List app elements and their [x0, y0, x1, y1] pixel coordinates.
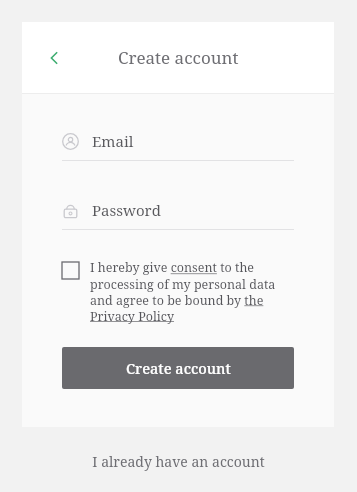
button[interactable]: I hereby give consent to the processing … [90, 259, 294, 324]
staticText: Create account [126, 358, 231, 378]
button[interactable]: I already have an account [92, 452, 265, 471]
button[interactable]: Create account [62, 347, 294, 389]
button[interactable]: Consent checkbox [62, 262, 79, 279]
staticText: Email [92, 131, 134, 151]
staticText: I already have an account [92, 452, 265, 471]
button[interactable]: Email [62, 131, 294, 161]
staticText: Create account [118, 46, 239, 69]
staticText: Password [92, 200, 161, 220]
button[interactable]: Back [38, 41, 72, 75]
button[interactable]: Password [62, 200, 294, 230]
